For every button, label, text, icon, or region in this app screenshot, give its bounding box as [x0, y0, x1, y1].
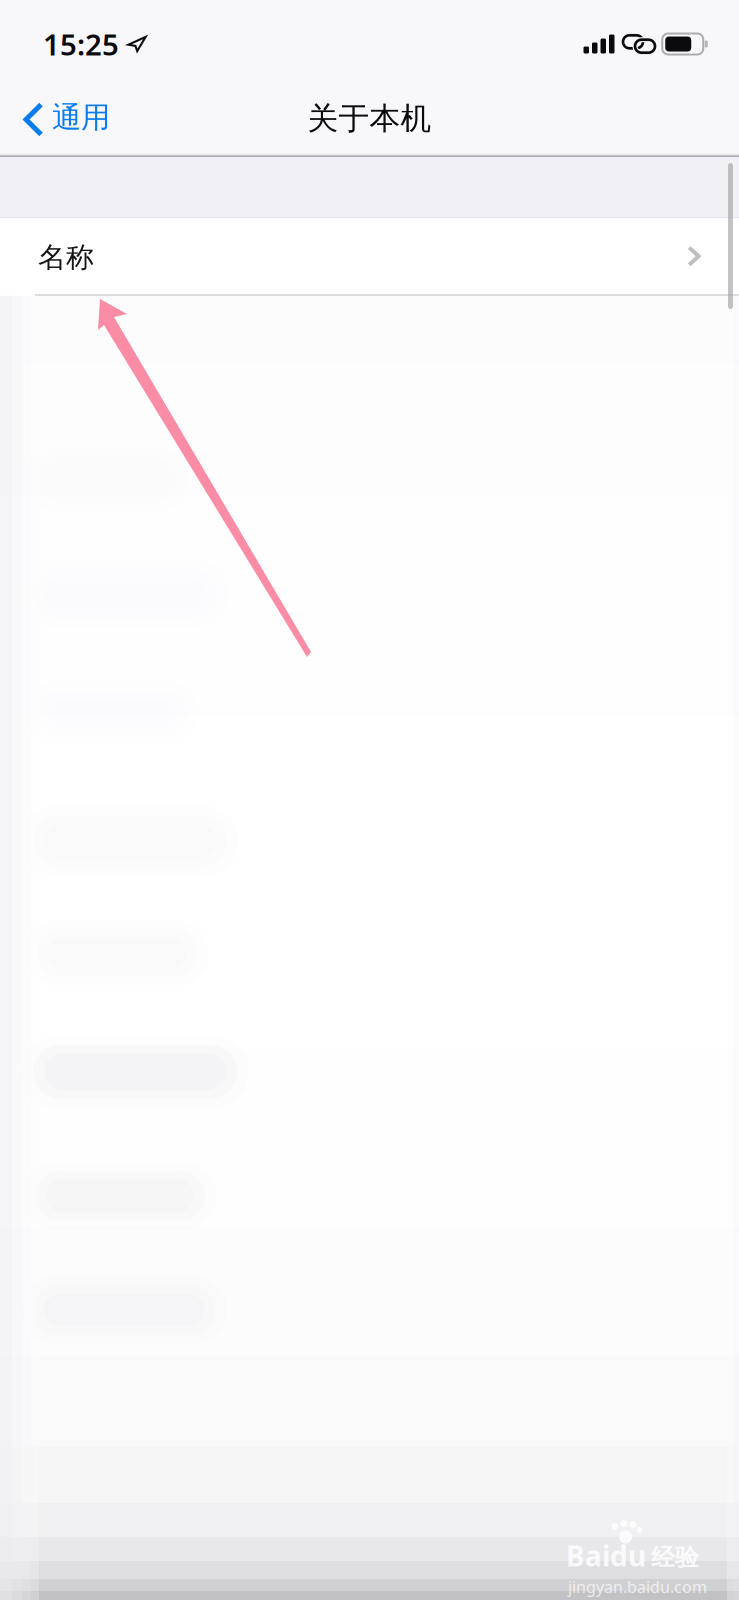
- staticText: 名称: [38, 240, 94, 275]
- staticText: jingyan.baidu.com: [568, 1576, 707, 1597]
- staticText: 通用: [52, 99, 110, 135]
- staticText: Baidu: [566, 1537, 646, 1574]
- staticText: 15:25: [43, 24, 119, 63]
- button[interactable]: 名称: [0, 218, 739, 294]
- staticText: 经验: [651, 1543, 699, 1572]
- button[interactable]: 通用: [0, 88, 128, 157]
- staticText: 关于本机: [307, 100, 431, 137]
